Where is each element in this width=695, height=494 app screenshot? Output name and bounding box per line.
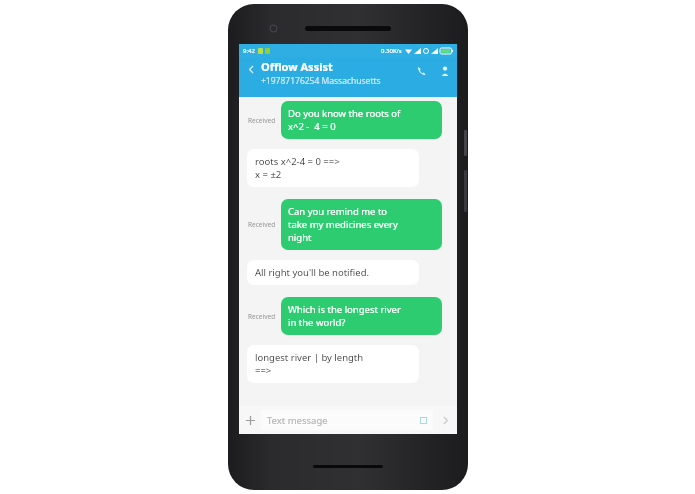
staticText: Can you remind me to take my medicines e… <box>288 205 398 244</box>
button[interactable]: Do you know the roots of x^2 - 4 = 0 <box>281 101 442 139</box>
button[interactable]: longest river | by length ==> <box>247 345 419 383</box>
staticText: Received <box>248 220 276 229</box>
button[interactable]: Can you remind me to take my medicines e… <box>281 199 442 250</box>
staticText: roots x^2-4 = 0 ==> x = ±2 <box>255 155 340 181</box>
button[interactable]: Add attachment <box>239 409 261 431</box>
staticText: Text message <box>267 414 328 427</box>
staticText: Do you know the roots of x^2 - 4 = 0 <box>288 107 401 133</box>
staticText: All right you'll be notified. <box>255 266 370 279</box>
button[interactable]: Call <box>411 60 433 82</box>
button[interactable]: Which is the longest river in the world? <box>281 297 442 335</box>
staticText: Which is the longest river in the world? <box>288 303 401 329</box>
button[interactable]: Text message <box>261 410 433 430</box>
button[interactable]: Contact details <box>433 59 457 83</box>
staticText: Received <box>248 312 276 321</box>
staticText: longest river | by length ==> <box>255 351 364 377</box>
staticText: 0.30K/s <box>381 47 402 55</box>
button[interactable]: Back <box>241 59 261 79</box>
staticText: 9:42 <box>243 47 255 55</box>
button[interactable]: Send <box>433 408 457 432</box>
button[interactable]: All right you'll be notified. <box>247 260 419 285</box>
staticText: +19787176254 Massachusetts <box>261 75 381 87</box>
button[interactable]: roots x^2-4 = 0 ==> x = ±2 <box>247 149 419 187</box>
staticText: Offlow Assist <box>261 59 333 74</box>
staticText: Received <box>248 116 276 125</box>
